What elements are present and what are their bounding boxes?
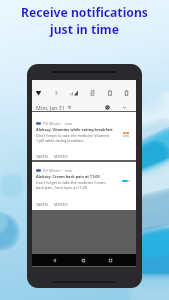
staticText: Alekssy: Vitamins while eating breakfast: [36, 127, 113, 132]
button[interactable]: Back: [48, 254, 60, 266]
button[interactable]: TAKEN: [36, 154, 54, 159]
button[interactable]: Pill Minder · now ·: [32, 162, 136, 210]
staticText: MISSED: [54, 202, 68, 207]
button[interactable]: TAKEN: [36, 202, 54, 207]
button[interactable]: Collapse: [120, 103, 129, 111]
button[interactable]: Home: [77, 254, 89, 266]
staticText: Alekssy: Cream back pain at 11:00: [36, 174, 100, 179]
staticText: Don't forget to take the medicine Cream …: [36, 180, 106, 190]
staticText: Receive notifications: [21, 4, 148, 21]
staticText: MISSED: [54, 154, 68, 159]
staticText: Don't forget to take the medicine Vitami…: [36, 133, 110, 143]
staticText: Mon, Jan 31: [36, 104, 65, 111]
button[interactable]: MISSED: [54, 202, 68, 207]
button[interactable]: Pill Minder · now ·: [32, 112, 136, 160]
button[interactable]: Recents: [104, 254, 116, 266]
staticText: TAKEN: [36, 202, 48, 207]
button[interactable]: MISSED: [54, 154, 68, 159]
staticText: Pill Minder · now ·: [43, 121, 74, 126]
staticText: Pill Minder · now ·: [43, 168, 74, 173]
staticText: TAKEN: [36, 154, 48, 159]
staticText: just in time: [50, 21, 119, 38]
button[interactable]: Settings: [103, 103, 112, 111]
